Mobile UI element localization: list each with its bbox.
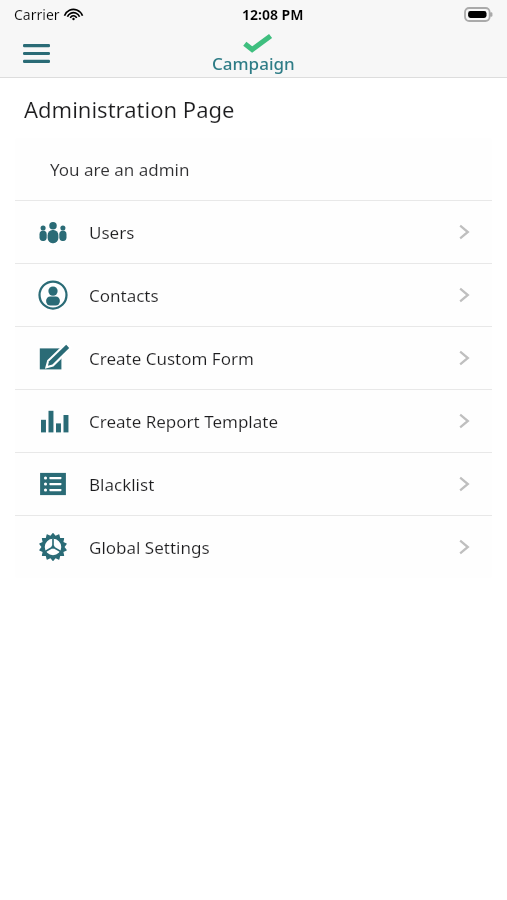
button[interactable]: Global Settings bbox=[15, 516, 492, 578]
staticText: Blacklist bbox=[89, 473, 155, 496]
staticText: You are an admin bbox=[50, 158, 190, 181]
staticText: Campaign bbox=[212, 52, 295, 75]
staticText: Users bbox=[89, 221, 135, 244]
staticText: Create Report Template bbox=[89, 410, 279, 433]
staticText: Create Custom Form bbox=[89, 347, 254, 370]
button[interactable]: Contacts bbox=[15, 264, 492, 326]
staticText: 12:08 PM bbox=[242, 5, 304, 24]
staticText: Carrier bbox=[14, 5, 60, 24]
button[interactable]: Create Custom Form bbox=[15, 327, 492, 389]
staticText: Administration Page bbox=[24, 94, 235, 124]
staticText: Global Settings bbox=[89, 536, 210, 559]
button[interactable]: Users bbox=[15, 201, 492, 263]
button[interactable]: Create Report Template bbox=[15, 390, 492, 452]
button[interactable]: Menu bbox=[14, 31, 58, 75]
button[interactable]: Blacklist bbox=[15, 453, 492, 515]
staticText: Contacts bbox=[89, 284, 159, 307]
